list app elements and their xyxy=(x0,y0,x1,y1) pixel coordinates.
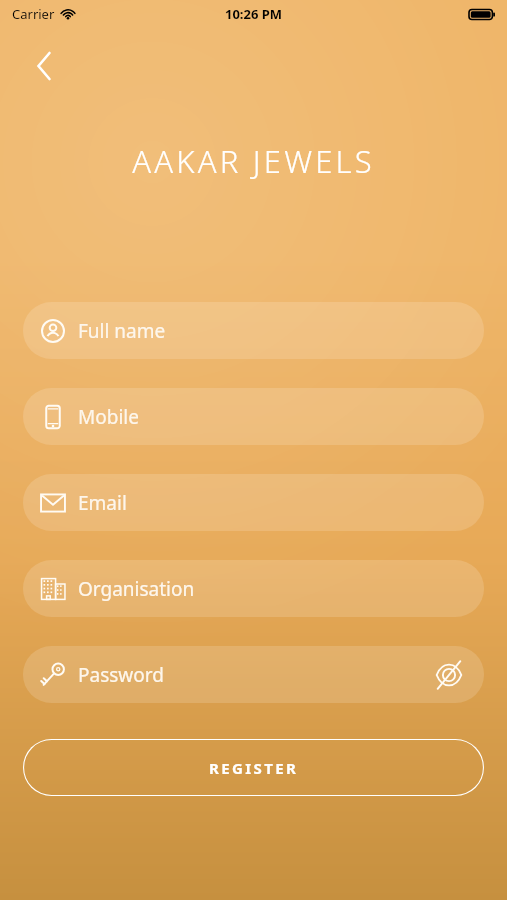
staticText: 10:26 PM xyxy=(225,5,283,23)
button[interactable]: Show password xyxy=(432,658,466,692)
button[interactable]: Organisation xyxy=(23,560,484,617)
button[interactable]: Back xyxy=(18,42,66,90)
button[interactable]: Password xyxy=(23,646,484,703)
button[interactable]: Email xyxy=(23,474,484,531)
staticText: REGISTER xyxy=(209,758,299,778)
staticText: Mobile xyxy=(78,404,139,430)
staticText: Email xyxy=(78,490,127,516)
staticText: Password xyxy=(78,662,164,688)
button[interactable]: Full name xyxy=(23,302,484,359)
staticText: AAKAR JEWELS xyxy=(0,140,507,182)
button[interactable]: REGISTER xyxy=(23,739,484,796)
staticText: Organisation xyxy=(78,576,195,602)
staticText: Full name xyxy=(78,318,166,344)
button[interactable]: Mobile xyxy=(23,388,484,445)
staticText: Carrier xyxy=(12,5,55,23)
